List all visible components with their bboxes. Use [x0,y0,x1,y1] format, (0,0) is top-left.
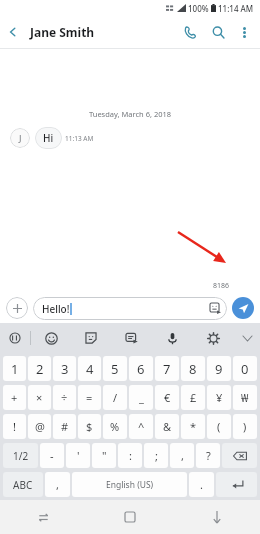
button[interactable]: × [28,385,51,410]
button[interactable]: , [170,443,194,468]
staticText: ' [77,448,80,463]
button[interactable]: English (US) [72,472,187,497]
button[interactable]: Call [176,18,204,46]
button[interactable]: $ [78,414,101,439]
button[interactable]: Voice input [152,323,193,353]
button[interactable]: 9 [207,356,231,381]
button[interactable]: : [118,443,142,468]
button[interactable]: ¥ [207,385,231,410]
staticText: 8 [189,360,197,378]
button[interactable]: & [155,414,179,439]
button[interactable]: / [103,385,127,410]
button[interactable]: " [92,443,116,468]
button[interactable]: 3 [53,356,76,381]
button[interactable]: More options [232,20,256,44]
button[interactable]: Send [232,297,254,319]
button[interactable]: 7 [155,356,179,381]
button[interactable]: * [181,414,205,439]
staticText: ! [13,419,16,434]
staticText: + [11,390,18,405]
button[interactable]: % [103,414,127,439]
staticText: 5 [111,360,119,378]
button[interactable]: Collapse [234,323,260,353]
button[interactable]: Emoji [31,323,71,353]
button[interactable]: + [3,385,26,410]
staticText: - [50,448,54,463]
staticText: Hello! [42,302,70,316]
button[interactable]: @ [28,414,51,439]
button[interactable]: ABC [3,472,43,497]
button[interactable]: Hi [43,131,54,145]
staticText: ^ [138,419,145,434]
button[interactable]: GIF [111,323,152,353]
button[interactable]: Back [0,19,26,45]
button[interactable]: ' [66,443,90,468]
staticText: 11:13 AM [65,134,94,143]
staticText: = [86,390,93,405]
staticText: Hi [43,131,54,145]
button[interactable]: Enter [216,472,257,497]
staticText: J [19,132,22,144]
staticText: " [102,448,107,463]
button[interactable]: ) [233,414,257,439]
staticText: ( [217,419,221,434]
button[interactable]: ₩ [233,385,257,410]
button[interactable]: Add attachment [6,297,28,319]
staticText: _ [139,390,144,405]
button[interactable]: 0 [233,356,257,381]
button[interactable]: £ [181,385,205,410]
button[interactable]: 1/2 [3,443,38,468]
staticText: English (US) [106,479,154,491]
staticText: ÷ [61,390,68,405]
button[interactable]: ! [3,414,26,439]
button[interactable]: ÷ [53,385,76,410]
staticText: 1 [11,360,19,378]
staticText: * [190,419,197,434]
button[interactable]: Hello! [42,297,222,320]
button[interactable]: Backspace [222,443,257,468]
button[interactable]: Translate [0,323,30,353]
staticText: ; [155,448,158,463]
staticText: × [36,390,43,405]
staticText: $ [86,419,93,434]
button[interactable]: Sticker [71,323,111,353]
button[interactable]: 6 [129,356,153,381]
button[interactable]: 2 [28,356,51,381]
button[interactable]: # [53,414,76,439]
staticText: 0 [241,360,249,378]
staticText: / [113,390,118,405]
staticText: 4 [86,360,94,378]
staticText: € [164,390,171,405]
button[interactable]: - [40,443,64,468]
button[interactable]: Hide keyboard [173,500,260,534]
staticText: @ [35,419,45,434]
button[interactable]: 5 [103,356,127,381]
button[interactable]: _ [129,385,153,410]
staticText: 7 [163,360,171,378]
button[interactable]: ( [207,414,231,439]
button[interactable]: € [155,385,179,410]
button[interactable]: Home [86,500,173,534]
staticText: 3 [61,360,69,378]
button[interactable]: ^ [129,414,153,439]
button[interactable]: ? [196,443,220,468]
button[interactable]: 4 [78,356,101,381]
staticText: 6 [137,360,145,378]
button[interactable]: Stickers [209,302,222,315]
staticText: 8186 [213,281,230,291]
button[interactable]: 8 [181,356,205,381]
button[interactable]: Settings [193,323,234,353]
button[interactable]: 1 [3,356,26,381]
button[interactable]: Search [204,18,232,46]
staticText: % [110,419,120,434]
staticText: & [163,419,172,434]
staticText: # [61,419,69,434]
staticText: . [200,477,203,492]
button[interactable]: . [189,472,214,497]
button[interactable]: ; [144,443,168,468]
button[interactable]: , [45,472,70,497]
staticText: 2 [36,360,44,378]
staticText: ¥ [216,390,223,405]
button[interactable]: Recents [0,500,86,534]
button[interactable]: = [78,385,101,410]
